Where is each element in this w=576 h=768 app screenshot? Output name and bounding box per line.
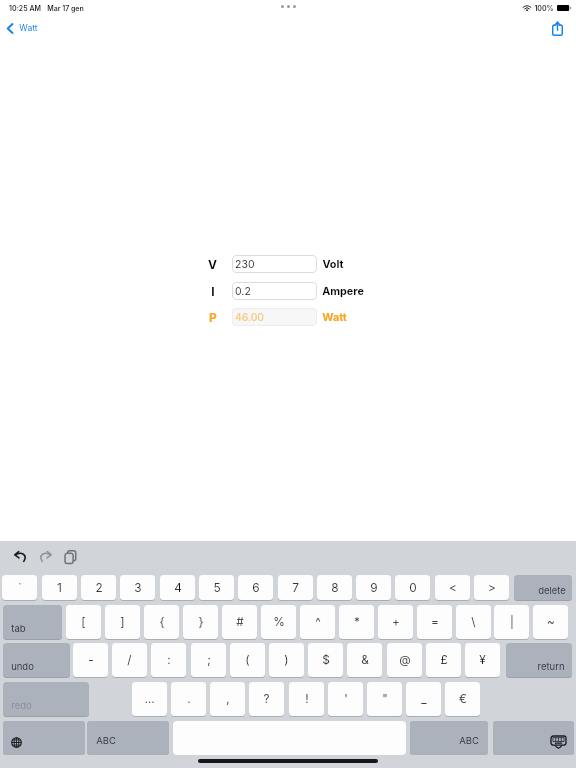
- button[interactable]: +: [378, 605, 413, 639]
- staticText: +: [392, 615, 400, 629]
- staticText: _: [421, 692, 427, 706]
- button[interactable]: :: [151, 643, 186, 677]
- button[interactable]: …: [132, 682, 167, 716]
- button[interactable]: Paste: [61, 547, 80, 566]
- staticText: @: [399, 653, 411, 667]
- staticText: €: [459, 692, 467, 706]
- button[interactable]: 2: [81, 575, 116, 600]
- staticText: 5: [213, 581, 221, 595]
- staticText: $: [322, 653, 330, 667]
- staticText: Mar 17 gen: [47, 4, 84, 12]
- staticText: 9: [370, 581, 378, 595]
- staticText: =: [431, 615, 439, 629]
- button[interactable]: 230: [232, 255, 317, 273]
- button[interactable]: &: [347, 643, 382, 677]
- button[interactable]: .: [171, 682, 206, 716]
- button[interactable]: 3: [120, 575, 155, 600]
- button[interactable]: Watt: [7, 19, 38, 37]
- staticText: >: [488, 581, 496, 595]
- staticText: 4: [174, 581, 182, 595]
- staticText: Volt: [322, 258, 344, 271]
- button[interactable]: 46.00: [232, 308, 317, 326]
- staticText: (: [245, 653, 250, 667]
- button[interactable]: €: [445, 682, 480, 716]
- button[interactable]: }: [183, 605, 218, 639]
- staticText: %: [273, 615, 285, 629]
- button[interactable]: *: [339, 605, 374, 639]
- button[interactable]: delete: [514, 575, 572, 600]
- button[interactable]: £: [426, 643, 461, 677]
- button[interactable]: <: [435, 575, 470, 600]
- button[interactable]: Undo: [11, 547, 30, 566]
- staticText: ]: [120, 615, 125, 629]
- button[interactable]: Share: [547, 18, 568, 39]
- button[interactable]: Hide keyboard: [493, 721, 574, 755]
- button[interactable]: \: [456, 605, 491, 639]
- button[interactable]: ): [269, 643, 304, 677]
- button[interactable]: 1: [42, 575, 77, 600]
- button[interactable]: 9: [356, 575, 391, 600]
- staticText: …: [144, 692, 155, 706]
- button[interactable]: ABC: [87, 721, 169, 755]
- button[interactable]: ': [328, 682, 363, 716]
- staticText: redo: [11, 700, 32, 711]
- button[interactable]: ^: [300, 605, 335, 639]
- button[interactable]: redo: [3, 682, 89, 716]
- button[interactable]: #: [222, 605, 257, 639]
- staticText: ¥: [479, 653, 486, 667]
- staticText: ,: [226, 692, 230, 706]
- button[interactable]: |: [494, 605, 529, 639]
- button[interactable]: return: [506, 643, 572, 677]
- staticText: &: [361, 653, 369, 667]
- button[interactable]: 6: [238, 575, 273, 600]
- staticText: :: [167, 653, 171, 667]
- button[interactable]: 0: [395, 575, 430, 600]
- button[interactable]: tab: [3, 605, 62, 639]
- staticText: ^: [315, 615, 321, 629]
- button[interactable]: Language: [3, 721, 85, 755]
- button[interactable]: ,: [210, 682, 245, 716]
- button[interactable]: >: [474, 575, 509, 600]
- button[interactable]: /: [112, 643, 147, 677]
- staticText: Watt: [322, 311, 347, 324]
- button[interactable]: {: [144, 605, 179, 639]
- staticText: 6: [252, 581, 260, 595]
- staticText: ": [382, 692, 388, 706]
- staticText: ': [344, 692, 348, 706]
- button[interactable]: _: [406, 682, 441, 716]
- button[interactable]: undo: [3, 643, 70, 677]
- button[interactable]: @: [387, 643, 422, 677]
- button[interactable]: ¥: [465, 643, 500, 677]
- button[interactable]: !: [289, 682, 324, 716]
- staticText: \: [471, 615, 476, 629]
- button[interactable]: =: [417, 605, 452, 639]
- button[interactable]: 8: [317, 575, 352, 600]
- button[interactable]: ~: [533, 605, 568, 639]
- staticText: ;: [207, 653, 211, 667]
- staticText: I: [211, 284, 215, 299]
- button[interactable]: ;: [191, 643, 226, 677]
- button[interactable]: Redo: [36, 547, 55, 566]
- button[interactable]: 4: [160, 575, 195, 600]
- staticText: V: [208, 257, 217, 272]
- button[interactable]: $: [308, 643, 343, 677]
- staticText: 7: [292, 581, 299, 595]
- button[interactable]: (: [230, 643, 265, 677]
- staticText: ~: [547, 615, 555, 629]
- staticText: 3: [134, 581, 142, 595]
- button[interactable]: 0.2: [232, 282, 317, 300]
- button[interactable]: ]: [105, 605, 140, 639]
- button[interactable]: `: [2, 575, 37, 600]
- button[interactable]: ?: [249, 682, 284, 716]
- button[interactable]: %: [261, 605, 296, 639]
- button[interactable]: 7: [278, 575, 313, 600]
- staticText: #: [236, 615, 244, 629]
- button[interactable]: 5: [199, 575, 234, 600]
- button[interactable]: ABC: [410, 721, 488, 755]
- button[interactable]: [: [66, 605, 101, 639]
- staticText: *: [354, 615, 360, 629]
- button[interactable]: ": [367, 682, 402, 716]
- staticText: 2: [95, 581, 103, 595]
- button[interactable]: -: [73, 643, 108, 677]
